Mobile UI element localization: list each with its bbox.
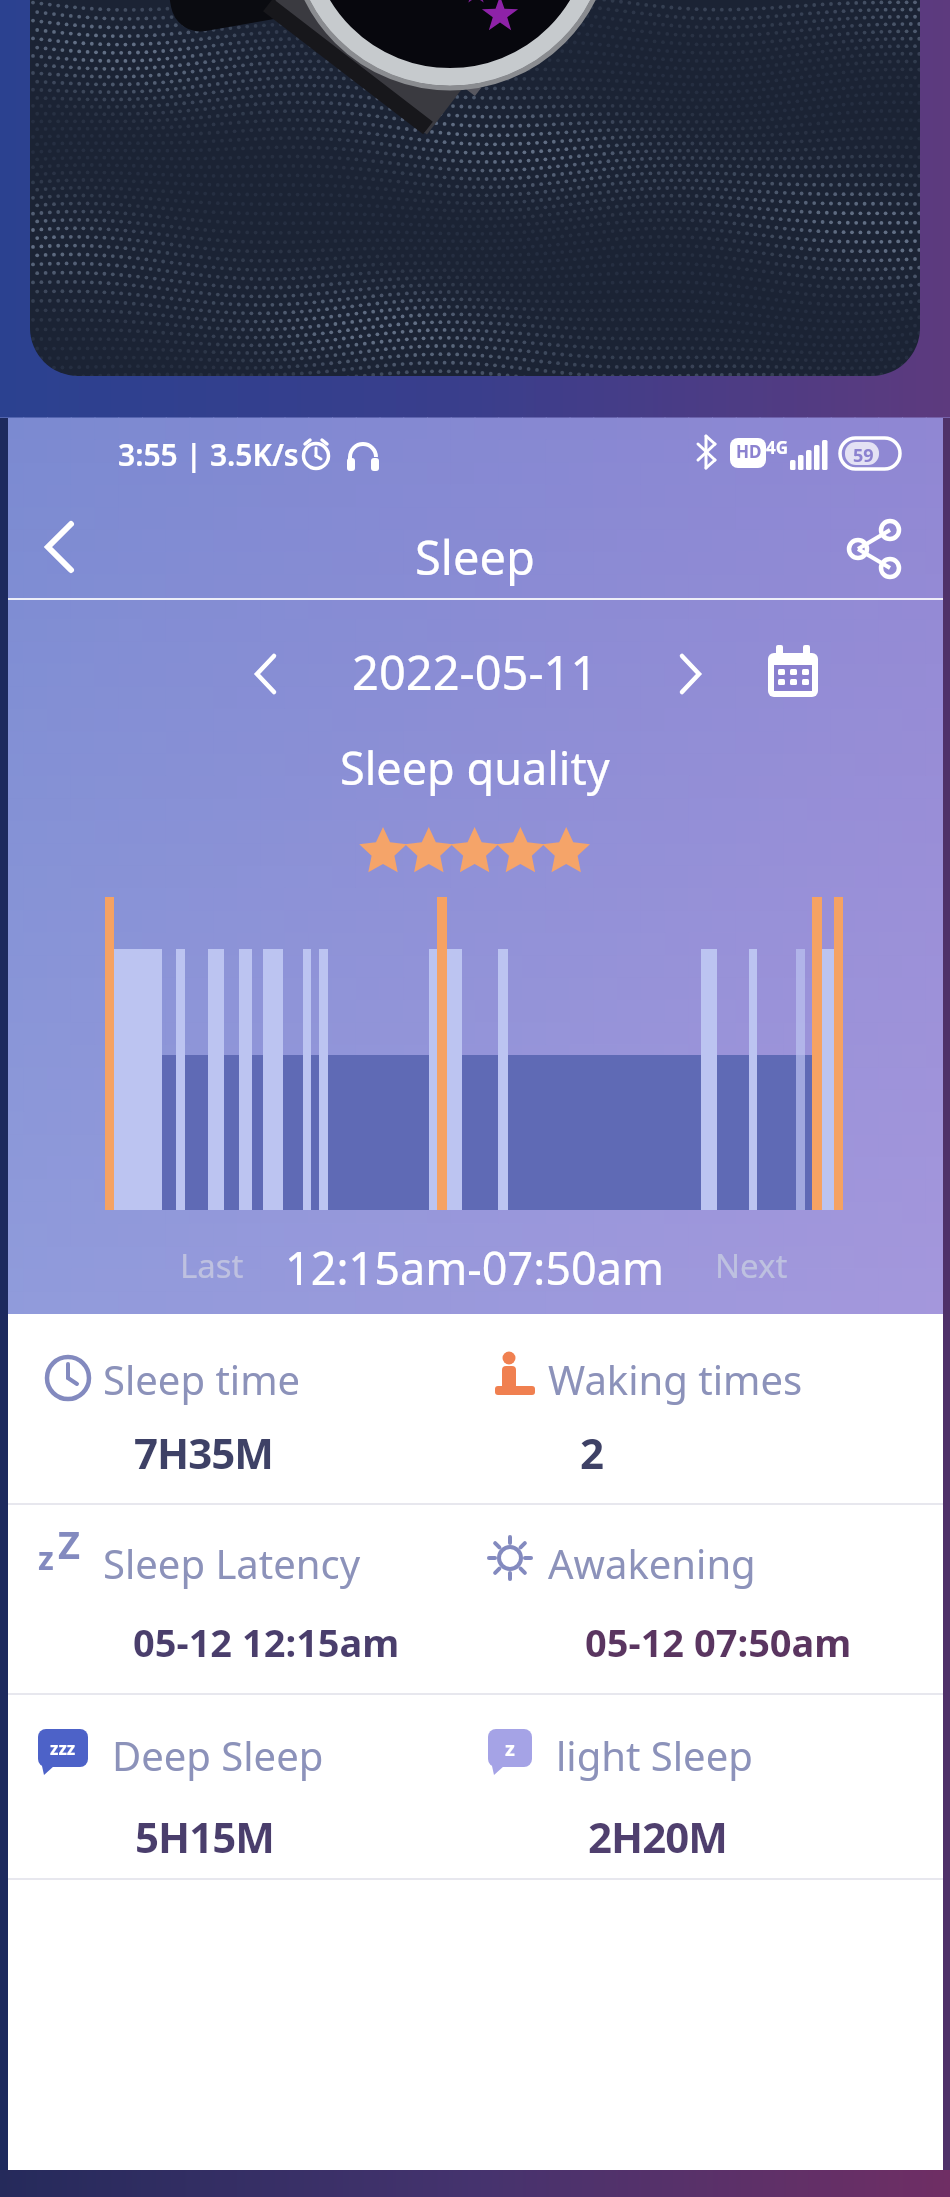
staticText: 12:15am-07:50am	[285, 1237, 665, 1295]
staticText: HD	[736, 440, 762, 463]
staticText: Next	[715, 1243, 788, 1288]
button[interactable]	[28, 510, 92, 584]
staticText: Waking times	[548, 1352, 803, 1406]
staticText: 2	[580, 1424, 605, 1481]
button[interactable]	[838, 513, 910, 585]
staticText: Sleep time	[103, 1352, 301, 1406]
staticText: light Sleep	[556, 1728, 753, 1782]
staticText: 3:55 | 3.5K/s	[118, 434, 299, 475]
button[interactable]: Last	[158, 1240, 266, 1290]
staticText: Last	[180, 1243, 244, 1288]
staticText: z	[505, 1735, 515, 1762]
staticText: Sleep Latency	[103, 1536, 361, 1590]
staticText: 7H35M	[134, 1424, 273, 1481]
staticText: 2022-05-11	[352, 640, 598, 704]
staticText: Z	[58, 1518, 81, 1570]
staticText: Sleep quality	[340, 737, 610, 798]
staticText: 4G	[766, 436, 789, 459]
staticText: z	[38, 1536, 54, 1580]
staticText: zzz	[50, 1737, 76, 1760]
staticText: 05-12 12:15am	[133, 1616, 400, 1668]
staticText: 59	[853, 443, 874, 468]
button[interactable]	[758, 640, 828, 704]
staticText: 2H20M	[588, 1808, 727, 1865]
staticText: 5H15M	[135, 1808, 274, 1865]
button[interactable]	[236, 646, 296, 702]
button[interactable]	[660, 646, 720, 702]
staticText: 05-12 07:50am	[585, 1616, 852, 1668]
staticText: Awakening	[548, 1536, 756, 1590]
staticText: Deep Sleep	[112, 1728, 324, 1782]
button[interactable]: Next	[697, 1240, 805, 1290]
staticText: Sleep	[415, 525, 535, 589]
